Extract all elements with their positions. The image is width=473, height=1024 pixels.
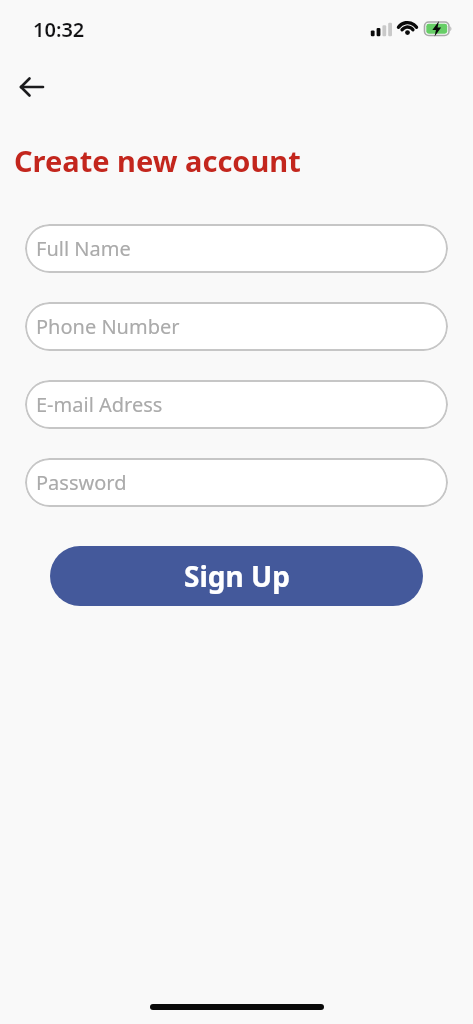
staticText: Phone Number	[36, 313, 180, 340]
button[interactable]	[12, 67, 52, 107]
staticText: Sign Up	[184, 557, 290, 595]
staticText: 10:32	[33, 16, 85, 43]
button[interactable]: Sign Up	[50, 546, 423, 606]
button[interactable]: Phone Number	[25, 302, 448, 351]
staticText: Full Name	[36, 235, 131, 262]
staticText: E-mail Adress	[36, 391, 163, 418]
staticText: Password	[36, 469, 127, 496]
button[interactable]: Full Name	[25, 224, 448, 273]
button[interactable]: Password	[25, 458, 448, 507]
button[interactable]: E-mail Adress	[25, 380, 448, 429]
staticText: Create new account	[14, 141, 301, 180]
